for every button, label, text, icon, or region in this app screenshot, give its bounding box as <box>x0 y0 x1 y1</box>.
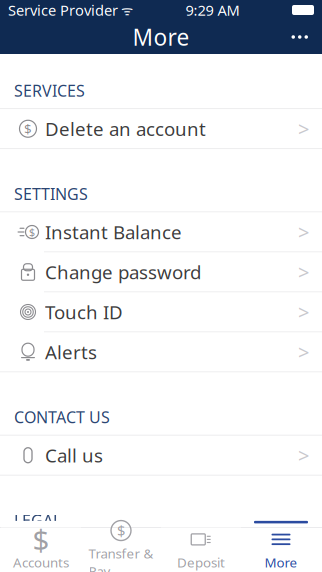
staticText: More <box>132 22 189 52</box>
staticText: $ <box>117 521 125 540</box>
button[interactable]: Change password <box>0 252 322 292</box>
button[interactable]: $ <box>1 528 81 572</box>
staticText: Accounts <box>13 553 69 571</box>
staticText: 9:29 AM <box>185 0 239 20</box>
button[interactable]: Alerts <box>0 332 322 372</box>
staticText: $ <box>24 120 32 138</box>
staticText: > <box>298 219 309 245</box>
button[interactable]: Deposit <box>161 528 241 572</box>
staticText: Transfer & Pay <box>88 544 153 572</box>
staticText: Service Provider <box>8 0 118 20</box>
button[interactable]: More options <box>277 23 322 51</box>
staticText: Delete an account <box>45 116 206 141</box>
staticText: $ <box>29 225 35 239</box>
staticText: CONTACT US <box>14 406 110 428</box>
staticText: > <box>298 115 309 142</box>
button[interactable]: $ <box>0 212 322 252</box>
staticText: ᯤ <box>118 1 133 19</box>
staticText: > <box>298 259 309 285</box>
staticText: > <box>298 339 309 365</box>
staticText: > <box>298 442 309 469</box>
staticText: SERVICES <box>14 80 85 101</box>
button[interactable]: $ <box>81 528 161 572</box>
staticText: LEGAL <box>14 510 61 531</box>
staticText: More <box>264 553 297 571</box>
staticText: Change password <box>45 260 201 284</box>
button[interactable]: Call us <box>0 436 322 476</box>
button[interactable]: More <box>241 528 321 572</box>
staticText: Touch ID <box>45 300 123 324</box>
staticText: Alerts <box>45 340 97 364</box>
staticText: $ <box>32 520 49 559</box>
staticText: Deposit <box>177 553 225 571</box>
staticText: SETTINGS <box>14 183 88 204</box>
button[interactable]: $ <box>0 109 322 149</box>
staticText: Call us <box>45 443 103 468</box>
staticText: Instant Balance <box>45 220 182 244</box>
staticText: > <box>298 299 309 325</box>
button[interactable]: Touch ID <box>0 292 322 332</box>
